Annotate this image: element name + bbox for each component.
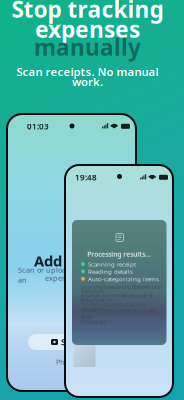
staticText: Auto-categorizing items	[88, 275, 159, 283]
staticText: Add expense	[34, 251, 126, 270]
staticText: für Heilbrote Mühlfischer ohne	[81, 302, 146, 308]
staticText: manually	[34, 32, 141, 62]
staticText: 19:48	[75, 172, 97, 183]
staticText: 01:03	[27, 121, 49, 132]
staticText: expense automatically.	[45, 273, 126, 283]
staticText: innerhalb von 20 Kalendertagen ab	[81, 293, 154, 299]
staticText: Stop tracking	[11, 0, 163, 24]
staticText: Kassenbon	[81, 289, 104, 295]
button[interactable]: Scan receipt	[28, 334, 135, 350]
staticText: Photos • Files	[56, 357, 107, 367]
staticText: Pfligpeitzbl	[81, 319, 105, 325]
staticText: Ursprungsbezeichnung Glasmilch und	[81, 284, 161, 290]
staticText: Scan or upload a receipt to log an	[18, 265, 126, 285]
staticText: expenses	[35, 14, 140, 44]
staticText: Reading details	[88, 267, 133, 276]
staticText: Scanning receipt	[88, 260, 136, 268]
staticText: Scan receipts. No manual	[16, 64, 158, 79]
staticText: Processing results…	[87, 249, 151, 259]
staticText: und	[81, 315, 90, 321]
staticText: work.	[72, 74, 103, 89]
staticText: Einkaufsdatum	[81, 297, 112, 303]
staticText: Kassenbon	[81, 306, 104, 312]
staticText: Gutgeschriebene Kassenzettel/Zweit-, Ein…	[81, 308, 157, 320]
staticText: Scan receipt	[61, 336, 112, 348]
